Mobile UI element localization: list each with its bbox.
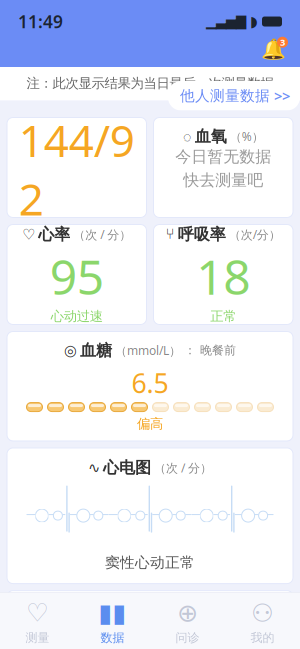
staticText: ◎ xyxy=(64,342,77,359)
staticText: 11:49 xyxy=(18,10,63,33)
staticText: 他人测量数据 xyxy=(180,87,270,105)
staticText: 血压 xyxy=(34,91,66,111)
button[interactable]: ⚕ xyxy=(7,117,146,217)
staticText: 144/92 xyxy=(19,111,135,228)
staticText: 一级高血压 xyxy=(44,228,109,244)
staticText: ： 晚餐前 xyxy=(184,343,236,358)
button[interactable]: ⑂ xyxy=(153,224,293,324)
staticText: ⚇ xyxy=(251,598,274,627)
staticText: 血糖 xyxy=(80,340,112,360)
staticText: ⚕ xyxy=(23,93,31,109)
button[interactable]: 通知 xyxy=(258,37,288,61)
button[interactable]: % xyxy=(7,591,293,649)
button[interactable]: ◌ xyxy=(153,117,293,217)
staticText: ▮▮ xyxy=(98,598,126,627)
staticText: 18 xyxy=(196,244,250,308)
button[interactable]: ♡ xyxy=(7,224,146,324)
staticText: ∿ xyxy=(88,459,100,476)
staticText: 心动过速 xyxy=(51,308,103,324)
staticText: 🔔 xyxy=(260,38,285,60)
staticText: 呼吸率 xyxy=(178,225,226,244)
staticText: （次 / 分） xyxy=(73,226,131,242)
staticText: （次 / 分） xyxy=(154,460,212,476)
staticText: 测量 xyxy=(25,630,49,645)
staticText: 快去测量吧 xyxy=(183,170,263,190)
staticText: 心电图 xyxy=(103,458,151,478)
staticText: 3 xyxy=(280,36,285,48)
button[interactable]: ◎ xyxy=(7,331,293,441)
staticText: ⊕ xyxy=(177,598,198,627)
staticText: (%) xyxy=(174,603,192,619)
staticText: 数据 xyxy=(100,630,124,645)
button[interactable]: ⚇ xyxy=(225,592,300,649)
staticText: （%） xyxy=(230,128,264,144)
staticText: >> xyxy=(274,86,290,105)
staticText: 注：此次显示结果为当日最后一次测量数据 xyxy=(26,75,273,91)
staticText: 95 xyxy=(50,244,104,308)
staticText: 窦性心动正常 xyxy=(105,554,195,572)
staticText: （次/分） xyxy=(229,226,281,242)
button[interactable]: ♡ xyxy=(0,592,75,649)
staticText: （mmHg） xyxy=(69,93,131,109)
staticText: % xyxy=(108,602,120,621)
staticText: ♡ xyxy=(22,226,35,243)
staticText: ◗ xyxy=(250,13,258,30)
button[interactable]: ⊕ xyxy=(150,592,225,649)
staticText: ◌ xyxy=(183,127,192,146)
staticText: 心率 xyxy=(38,225,70,244)
staticText: 正常 xyxy=(210,308,236,324)
staticText: （mmol/L） xyxy=(115,342,181,358)
staticText: 体脂率 xyxy=(123,602,171,621)
staticText: ▁▃▅▇ xyxy=(206,14,246,29)
button[interactable]: ∿ xyxy=(7,448,293,584)
button[interactable]: ▮▮ xyxy=(75,592,150,649)
staticText: ♡ xyxy=(26,598,49,627)
staticText: 问诊 xyxy=(175,630,199,645)
staticText: ♤ xyxy=(263,36,283,62)
button[interactable]: 他人测量数据 xyxy=(168,81,300,110)
staticText: 偏高 xyxy=(137,416,163,432)
staticText: ⑂ xyxy=(166,227,175,242)
staticText: 6.5 xyxy=(131,365,168,400)
staticText: 今日暂无数据 xyxy=(175,147,271,166)
staticText: 我的 xyxy=(250,630,274,645)
staticText: 血氧 xyxy=(195,126,227,146)
